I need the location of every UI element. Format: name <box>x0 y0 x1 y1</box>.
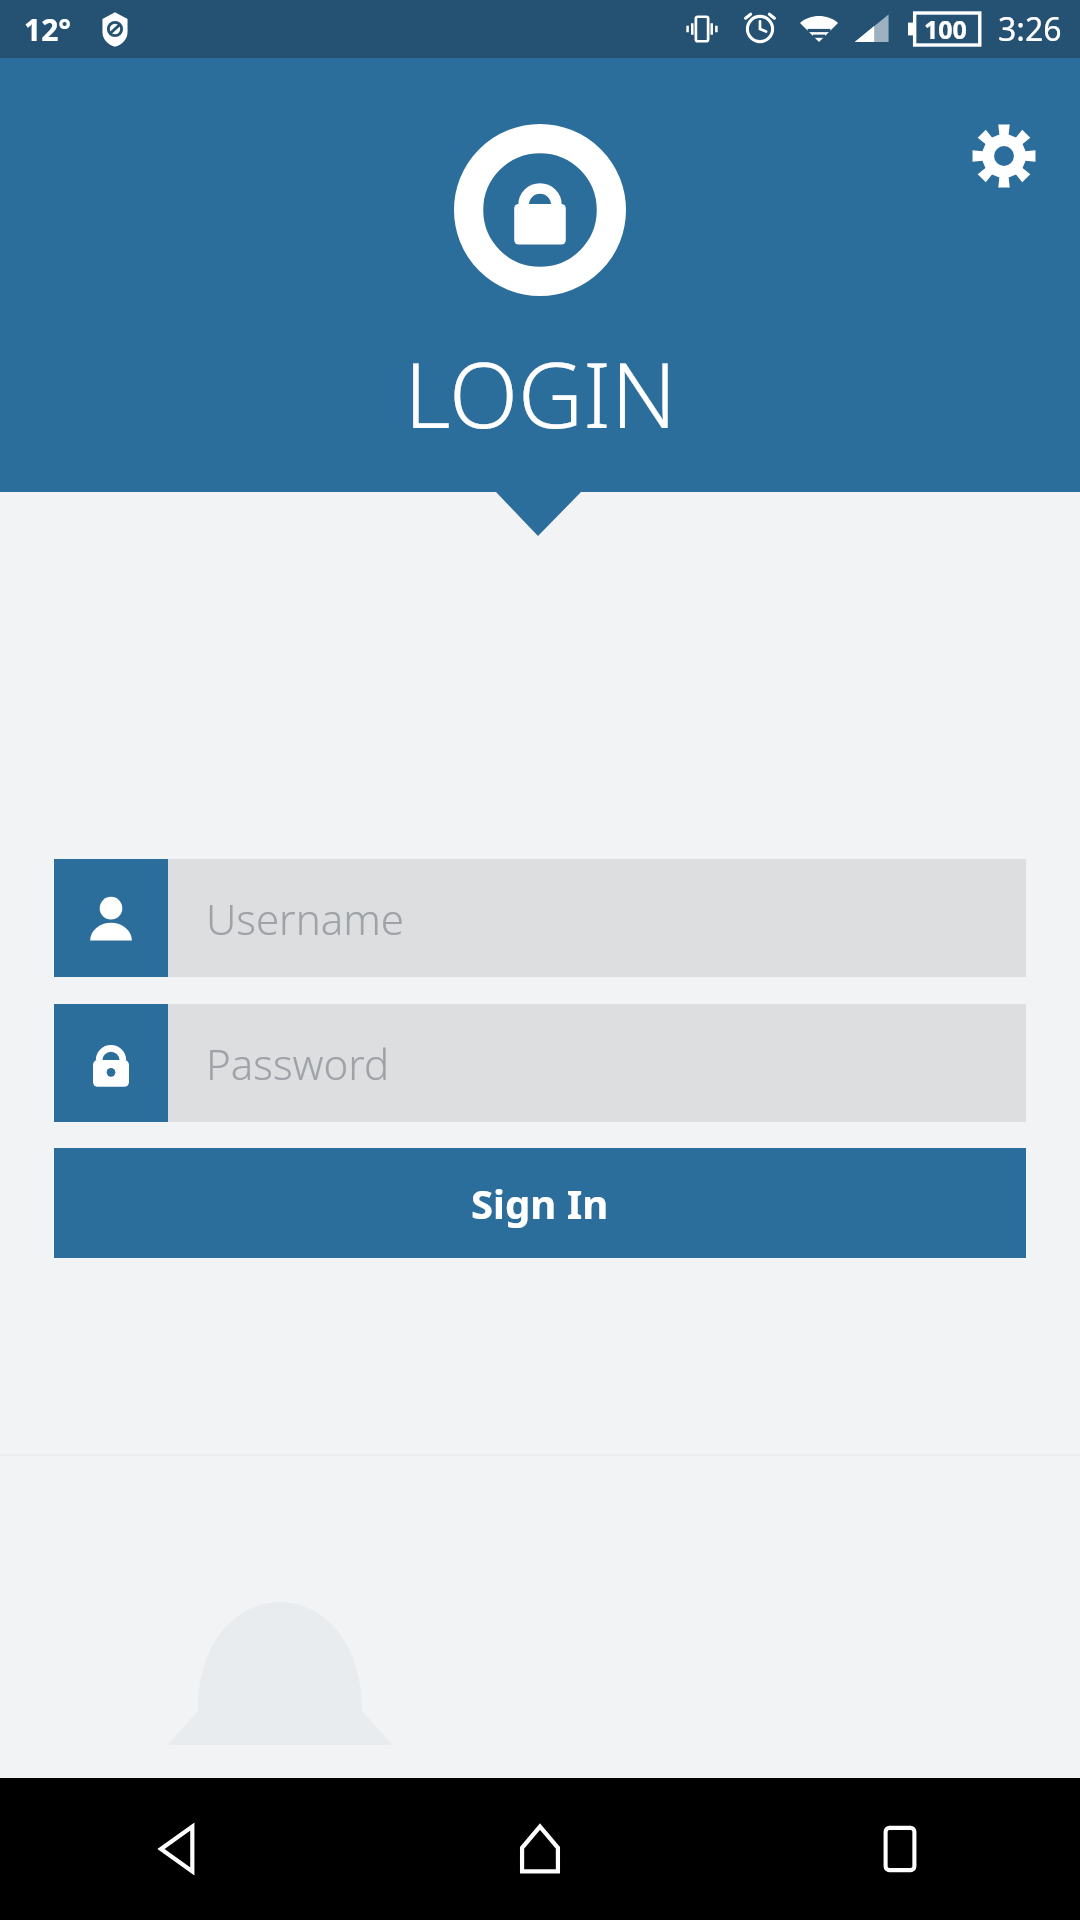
staticText: Username <box>206 890 404 947</box>
staticText: 12° <box>24 9 72 50</box>
staticText: Sign In <box>471 1176 609 1230</box>
button[interactable]: Password <box>54 1004 1026 1122</box>
button[interactable]: Back <box>0 1778 360 1920</box>
staticText: Password <box>206 1035 390 1092</box>
staticText: 3:26 <box>998 7 1062 51</box>
button[interactable]: Sign In <box>54 1148 1026 1258</box>
button[interactable]: Home <box>360 1778 720 1920</box>
staticText: LOGIN <box>404 332 677 455</box>
button[interactable]: Settings <box>954 106 1054 206</box>
button[interactable]: Recents <box>720 1778 1080 1920</box>
button[interactable]: Username <box>54 859 1026 977</box>
staticText: 100 <box>924 12 967 46</box>
